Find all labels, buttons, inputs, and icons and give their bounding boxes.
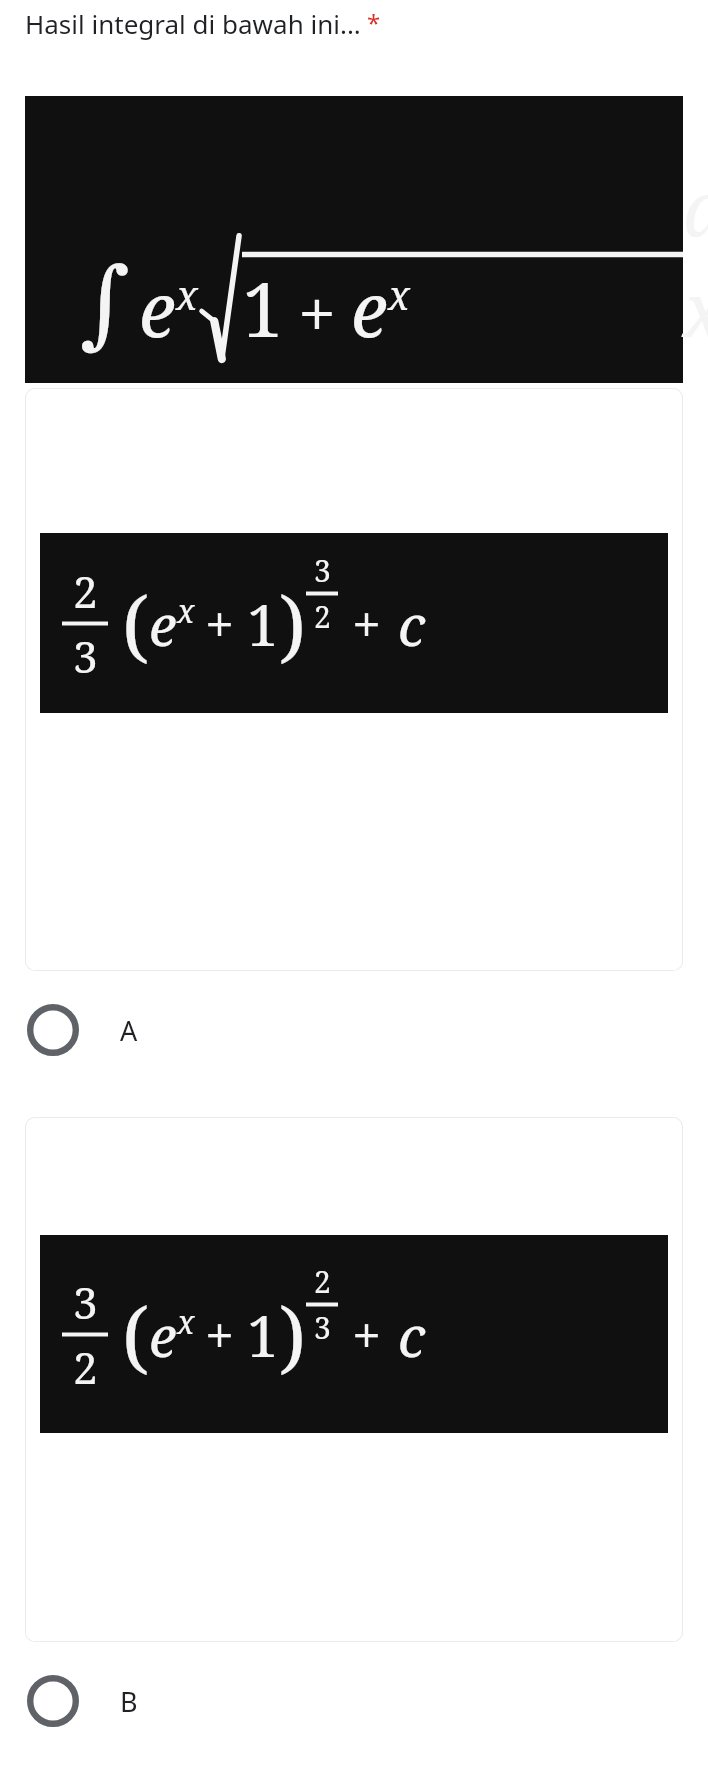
staticText: 3 — [314, 1307, 331, 1348]
staticText: x — [177, 1300, 195, 1344]
button[interactable]: Select option B — [0, 1642, 708, 1760]
button[interactable]: 2 — [25, 388, 683, 971]
staticText: e — [149, 1297, 177, 1373]
staticText: ( — [122, 1282, 149, 1388]
staticText: * — [367, 6, 381, 39]
staticText: 2 — [73, 561, 98, 621]
button[interactable]: Select option A — [0, 971, 708, 1089]
staticText: ( — [122, 571, 149, 677]
staticText: 1 — [247, 1297, 279, 1373]
staticText: x — [388, 267, 410, 321]
other: Select option A — [27, 1004, 79, 1056]
staticText: 3 — [73, 626, 98, 686]
staticText: ) — [279, 571, 306, 677]
staticText: + — [205, 588, 235, 659]
staticText: 2 — [73, 1337, 98, 1397]
staticText: ) — [279, 1282, 306, 1388]
staticText: B — [120, 1683, 138, 1720]
staticText: e — [139, 258, 176, 359]
staticText: 3 — [314, 550, 331, 591]
other: Select option B — [27, 1675, 79, 1727]
staticText: + — [352, 588, 382, 659]
staticText: A — [120, 1012, 138, 1049]
staticText: e — [351, 258, 388, 359]
staticText: 1 — [242, 258, 284, 359]
staticText: c — [398, 1297, 426, 1373]
staticText: 2 — [314, 596, 331, 637]
staticText: x — [177, 589, 195, 633]
staticText: + — [352, 1299, 382, 1370]
staticText: c — [398, 586, 426, 662]
staticText: ∫ — [80, 247, 131, 359]
staticText: e — [149, 586, 177, 662]
staticText: x — [176, 267, 198, 321]
staticText: + — [298, 266, 337, 359]
staticText: + — [205, 1299, 235, 1370]
staticText: 3 — [73, 1272, 98, 1332]
button[interactable]: 3 — [25, 1117, 683, 1642]
staticText: Hasil integral di bawah ini... — [25, 6, 361, 41]
staticText: 2 — [314, 1261, 331, 1302]
staticText: 1 — [247, 586, 279, 662]
